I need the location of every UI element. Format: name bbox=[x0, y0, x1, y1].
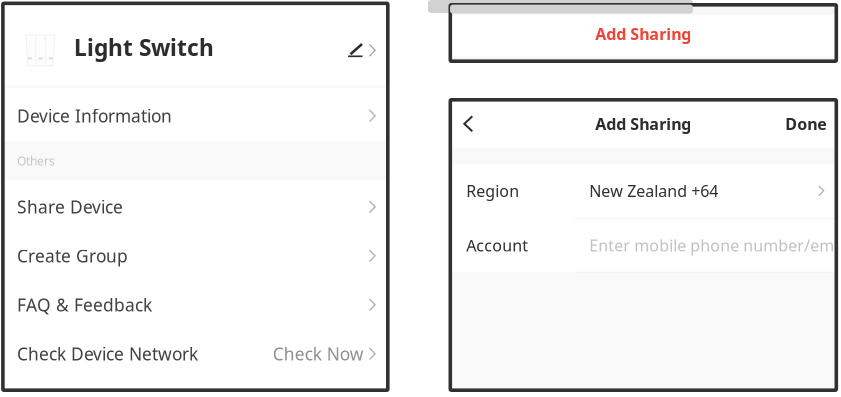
button[interactable]: Account bbox=[450, 219, 836, 272]
button[interactable]: Share Device bbox=[3, 180, 388, 229]
staticText: Device Information bbox=[17, 104, 172, 127]
button[interactable]: Region bbox=[450, 164, 836, 218]
staticText: Check Device Network bbox=[17, 342, 198, 365]
staticText: Create Group bbox=[17, 244, 128, 267]
button[interactable]: Create Group bbox=[3, 229, 388, 278]
staticText: New Zealand +64 bbox=[589, 180, 718, 201]
staticText: Light Switch bbox=[74, 32, 214, 62]
button[interactable]: Device Information bbox=[3, 88, 388, 141]
staticText: FAQ & Feedback bbox=[17, 293, 152, 316]
staticText: Enter mobile phone number/email a.. bbox=[589, 235, 841, 256]
button[interactable]: Light Switch bbox=[3, 3, 388, 85]
staticText: Add Sharing bbox=[595, 113, 691, 134]
button[interactable]: Back bbox=[450, 101, 487, 147]
staticText: Done bbox=[785, 113, 827, 134]
staticText: Account bbox=[466, 235, 528, 256]
staticText: Share Device bbox=[17, 195, 123, 218]
staticText: Region bbox=[466, 180, 519, 201]
staticText: Others bbox=[17, 153, 55, 169]
button[interactable]: Done bbox=[773, 101, 836, 147]
button[interactable]: Add Sharing bbox=[450, 15, 836, 57]
staticText: Check Now bbox=[273, 342, 364, 365]
button[interactable]: FAQ & Feedback bbox=[3, 278, 388, 327]
staticText: Add Sharing bbox=[595, 23, 691, 44]
button[interactable]: Check Device Network bbox=[3, 327, 388, 376]
